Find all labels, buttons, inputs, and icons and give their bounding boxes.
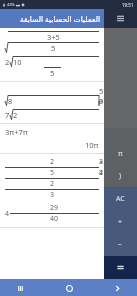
- staticText: 3π+7π: [5, 127, 28, 137]
- button[interactable]: π: [104, 143, 137, 165]
- staticText: 43%: [7, 2, 15, 7]
- staticText: 7: [5, 110, 10, 120]
- button[interactable]: 8: [0, 82, 104, 123]
- button[interactable]: AC: [104, 187, 137, 210]
- staticText: العمليات الحسابية السابقة: [0, 14, 100, 24]
- staticText: 8: [8, 96, 13, 106]
- staticText: 5: [51, 43, 56, 53]
- staticText: 19:51: [122, 2, 134, 8]
- staticText: 2: [5, 57, 10, 67]
- button[interactable]: −: [104, 233, 137, 256]
- staticText: 10: [13, 57, 22, 67]
- staticText: 40: [50, 214, 59, 224]
- staticText: 5: [50, 168, 55, 178]
- staticText: 3: [50, 190, 55, 200]
- staticText: 3+5: [47, 32, 60, 42]
- button[interactable]: Menu: [104, 9, 137, 28]
- staticText: AC: [116, 194, 125, 204]
- button[interactable]: ÷: [104, 210, 137, 233]
- staticText: 29: [50, 203, 59, 213]
- staticText: 5: [50, 68, 55, 78]
- staticText: 2: [13, 110, 18, 120]
- staticText: ÷: [118, 217, 123, 227]
- button[interactable]: ): [104, 165, 137, 187]
- button[interactable]: 3π+7π: [0, 124, 104, 153]
- button[interactable]: 3+5: [0, 28, 104, 81]
- button[interactable]: العمليات الحسابية السابقة: [0, 9, 104, 28]
- button[interactable]: Back: [111, 282, 123, 294]
- staticText: π: [118, 149, 123, 159]
- staticText: 2: [50, 157, 55, 167]
- staticText: ): [119, 171, 122, 181]
- button[interactable]: Recents: [14, 282, 26, 294]
- staticText: 2: [50, 179, 55, 189]
- button[interactable]: [104, 256, 137, 279]
- staticText: 4: [5, 209, 10, 219]
- button[interactable]: 2: [0, 154, 104, 227]
- staticText: 10π: [85, 140, 99, 150]
- button[interactable]: Home: [63, 282, 75, 294]
- staticText: −: [118, 240, 123, 250]
